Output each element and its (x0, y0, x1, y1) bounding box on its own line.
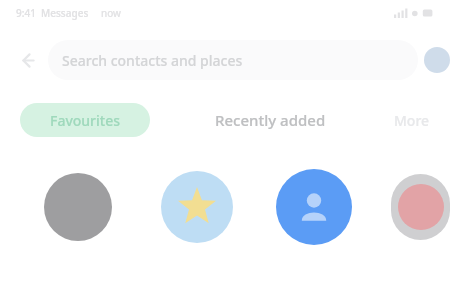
staticText: Favourites (50, 111, 121, 130)
button[interactable]: Recently added (215, 110, 326, 130)
button[interactable]: Favourite contact (161, 171, 233, 243)
button[interactable]: Contact avatar (44, 173, 112, 241)
button[interactable]: Contact avatar (391, 174, 450, 240)
staticText: 9:41 Messages (16, 6, 89, 20)
staticText: now (101, 6, 121, 20)
button[interactable]: Search contacts and places (48, 40, 418, 80)
button[interactable]: Profile (424, 47, 450, 73)
staticText: Recently added (215, 110, 326, 130)
staticText: More (394, 111, 430, 130)
button[interactable]: Favourites (20, 103, 150, 137)
button[interactable]: Add contact (276, 169, 352, 245)
button[interactable]: More (394, 111, 430, 130)
staticText: Search contacts and places (62, 51, 243, 70)
button[interactable]: Back (10, 43, 44, 77)
